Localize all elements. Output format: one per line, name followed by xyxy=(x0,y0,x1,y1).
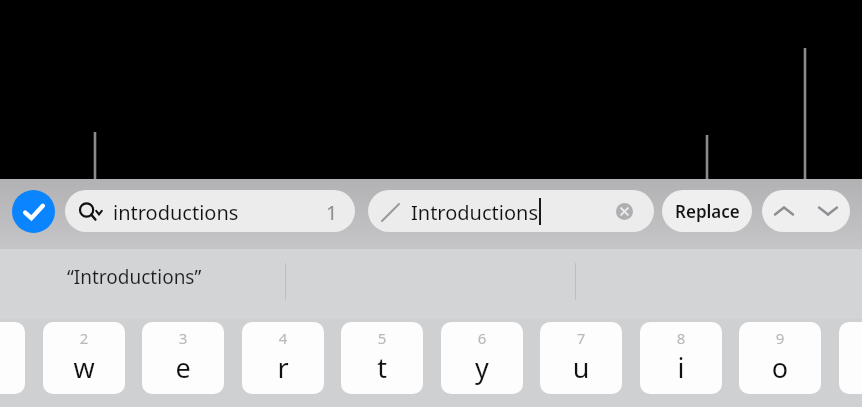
staticText: 1 xyxy=(326,199,338,226)
button[interactable]: Done xyxy=(12,190,55,233)
staticText: w xyxy=(43,349,125,386)
staticText: e xyxy=(142,349,224,386)
staticText: i xyxy=(640,349,722,386)
button[interactable]: Previous xyxy=(762,190,806,232)
button[interactable]: 0 xyxy=(839,322,862,394)
staticText: t xyxy=(341,349,423,386)
staticText: Introductions xyxy=(411,199,538,226)
staticText: “Introductions” xyxy=(67,264,202,290)
button[interactable]: 3 xyxy=(142,322,224,394)
button[interactable]: 7 xyxy=(540,322,622,394)
button[interactable]: Replace xyxy=(662,190,752,232)
staticText: 4 xyxy=(242,328,324,348)
button[interactable]: Clear xyxy=(616,203,633,220)
staticText: y xyxy=(441,349,523,386)
staticText: o xyxy=(739,349,821,386)
staticText: 2 xyxy=(43,328,125,348)
button[interactable]: 9 xyxy=(739,322,821,394)
staticText: 7 xyxy=(540,328,622,348)
button[interactable]: Next xyxy=(806,190,850,232)
staticText: introductions xyxy=(113,199,239,226)
button[interactable]: introductions xyxy=(65,190,355,232)
button[interactable]: 1 xyxy=(0,322,25,394)
staticText: r xyxy=(242,349,324,386)
staticText: 8 xyxy=(640,328,722,348)
staticText: u xyxy=(540,349,622,386)
staticText: 9 xyxy=(739,328,821,348)
button[interactable]: 2 xyxy=(43,322,125,394)
button[interactable]: Introductions xyxy=(368,190,654,232)
staticText: 6 xyxy=(441,328,523,348)
button[interactable]: “Introductions” xyxy=(67,264,202,290)
button[interactable]: 6 xyxy=(441,322,523,394)
staticText: 5 xyxy=(341,328,423,348)
button[interactable]: 5 xyxy=(341,322,423,394)
staticText: Replace xyxy=(675,200,740,223)
button[interactable]: 4 xyxy=(242,322,324,394)
button[interactable]: 8 xyxy=(640,322,722,394)
staticText: 3 xyxy=(142,328,224,348)
